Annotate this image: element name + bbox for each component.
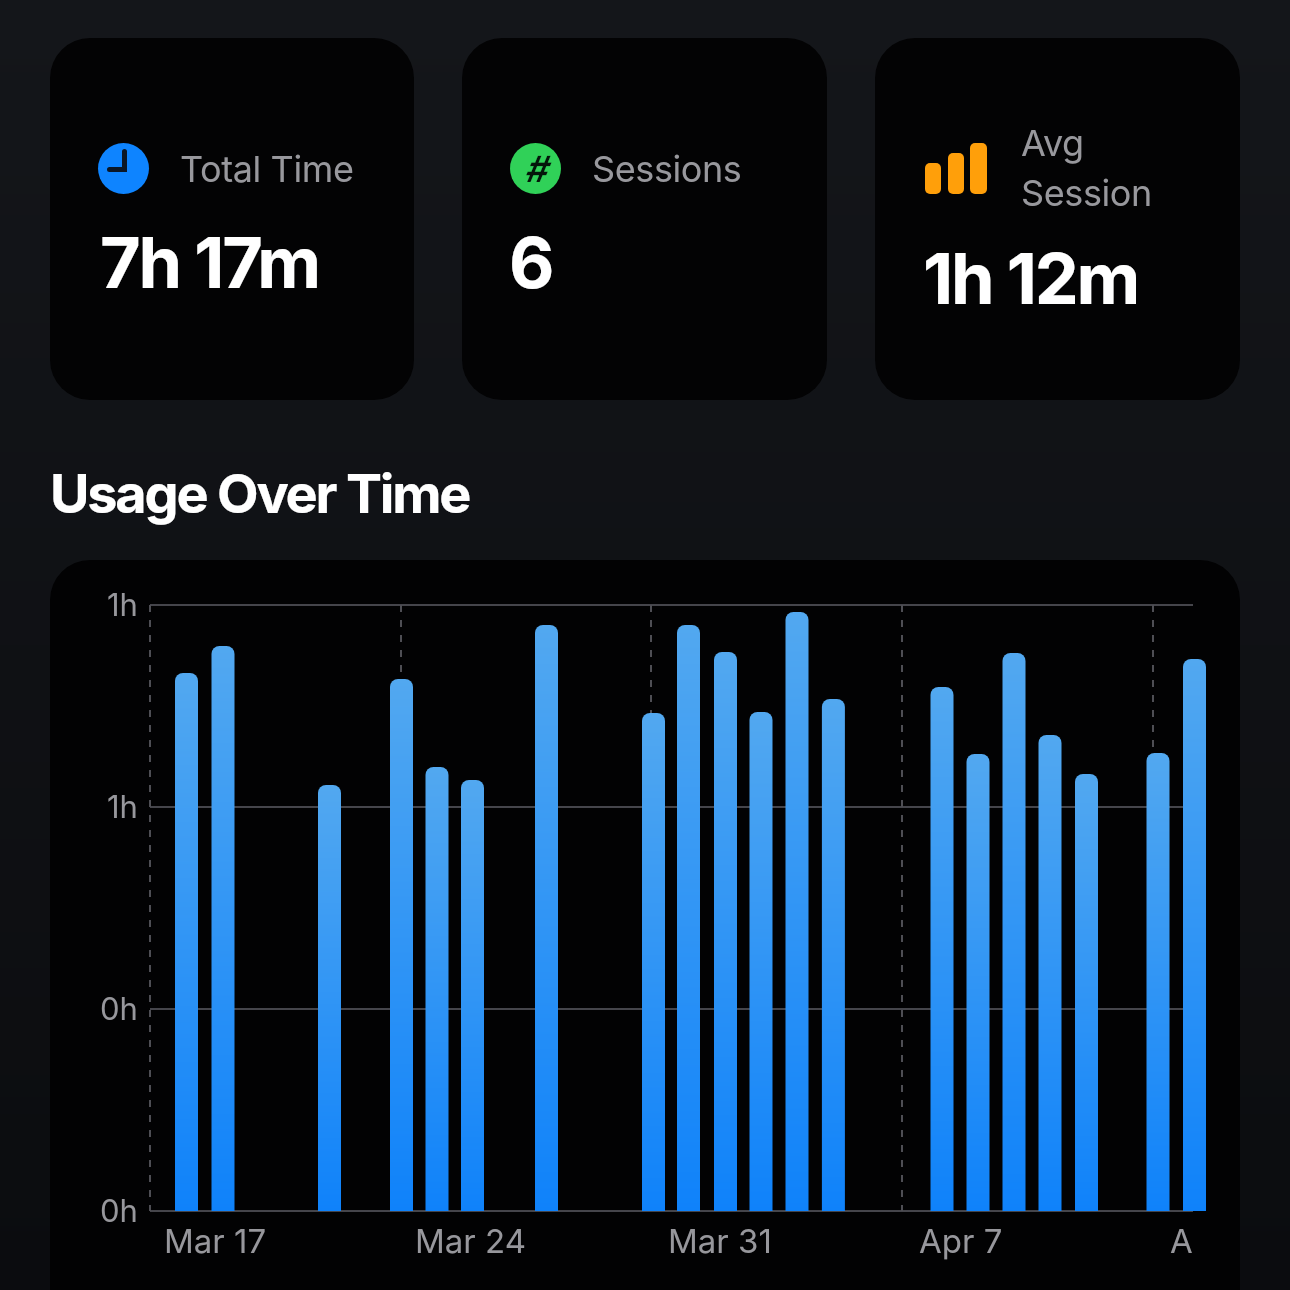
staticText: Mar 31 (668, 1221, 772, 1261)
staticText: 1h (107, 586, 138, 624)
staticText: 7h 17m (100, 220, 319, 305)
staticText: Sessions (592, 147, 742, 191)
staticText: Total Time (180, 147, 354, 191)
staticText: Usage Over Time (50, 461, 470, 526)
button[interactable]: # (462, 38, 827, 400)
button[interactable]: Total Time (50, 38, 414, 400)
staticText: 1h (107, 788, 138, 826)
staticText: 6 (509, 220, 553, 305)
staticText: Apr 7 (919, 1221, 1003, 1261)
staticText: A (1170, 1221, 1193, 1261)
button[interactable]: 1h (50, 560, 1240, 1290)
staticText: 0h (100, 990, 138, 1028)
staticText: 0h (100, 1192, 138, 1230)
staticText: Mar 17 (164, 1221, 267, 1261)
button[interactable]: Avg Session (875, 38, 1240, 400)
staticText: Mar 24 (415, 1221, 526, 1261)
staticText: 1h 12m (923, 236, 1139, 321)
staticText: Avg Session (1021, 121, 1152, 215)
staticText: # (524, 147, 548, 191)
